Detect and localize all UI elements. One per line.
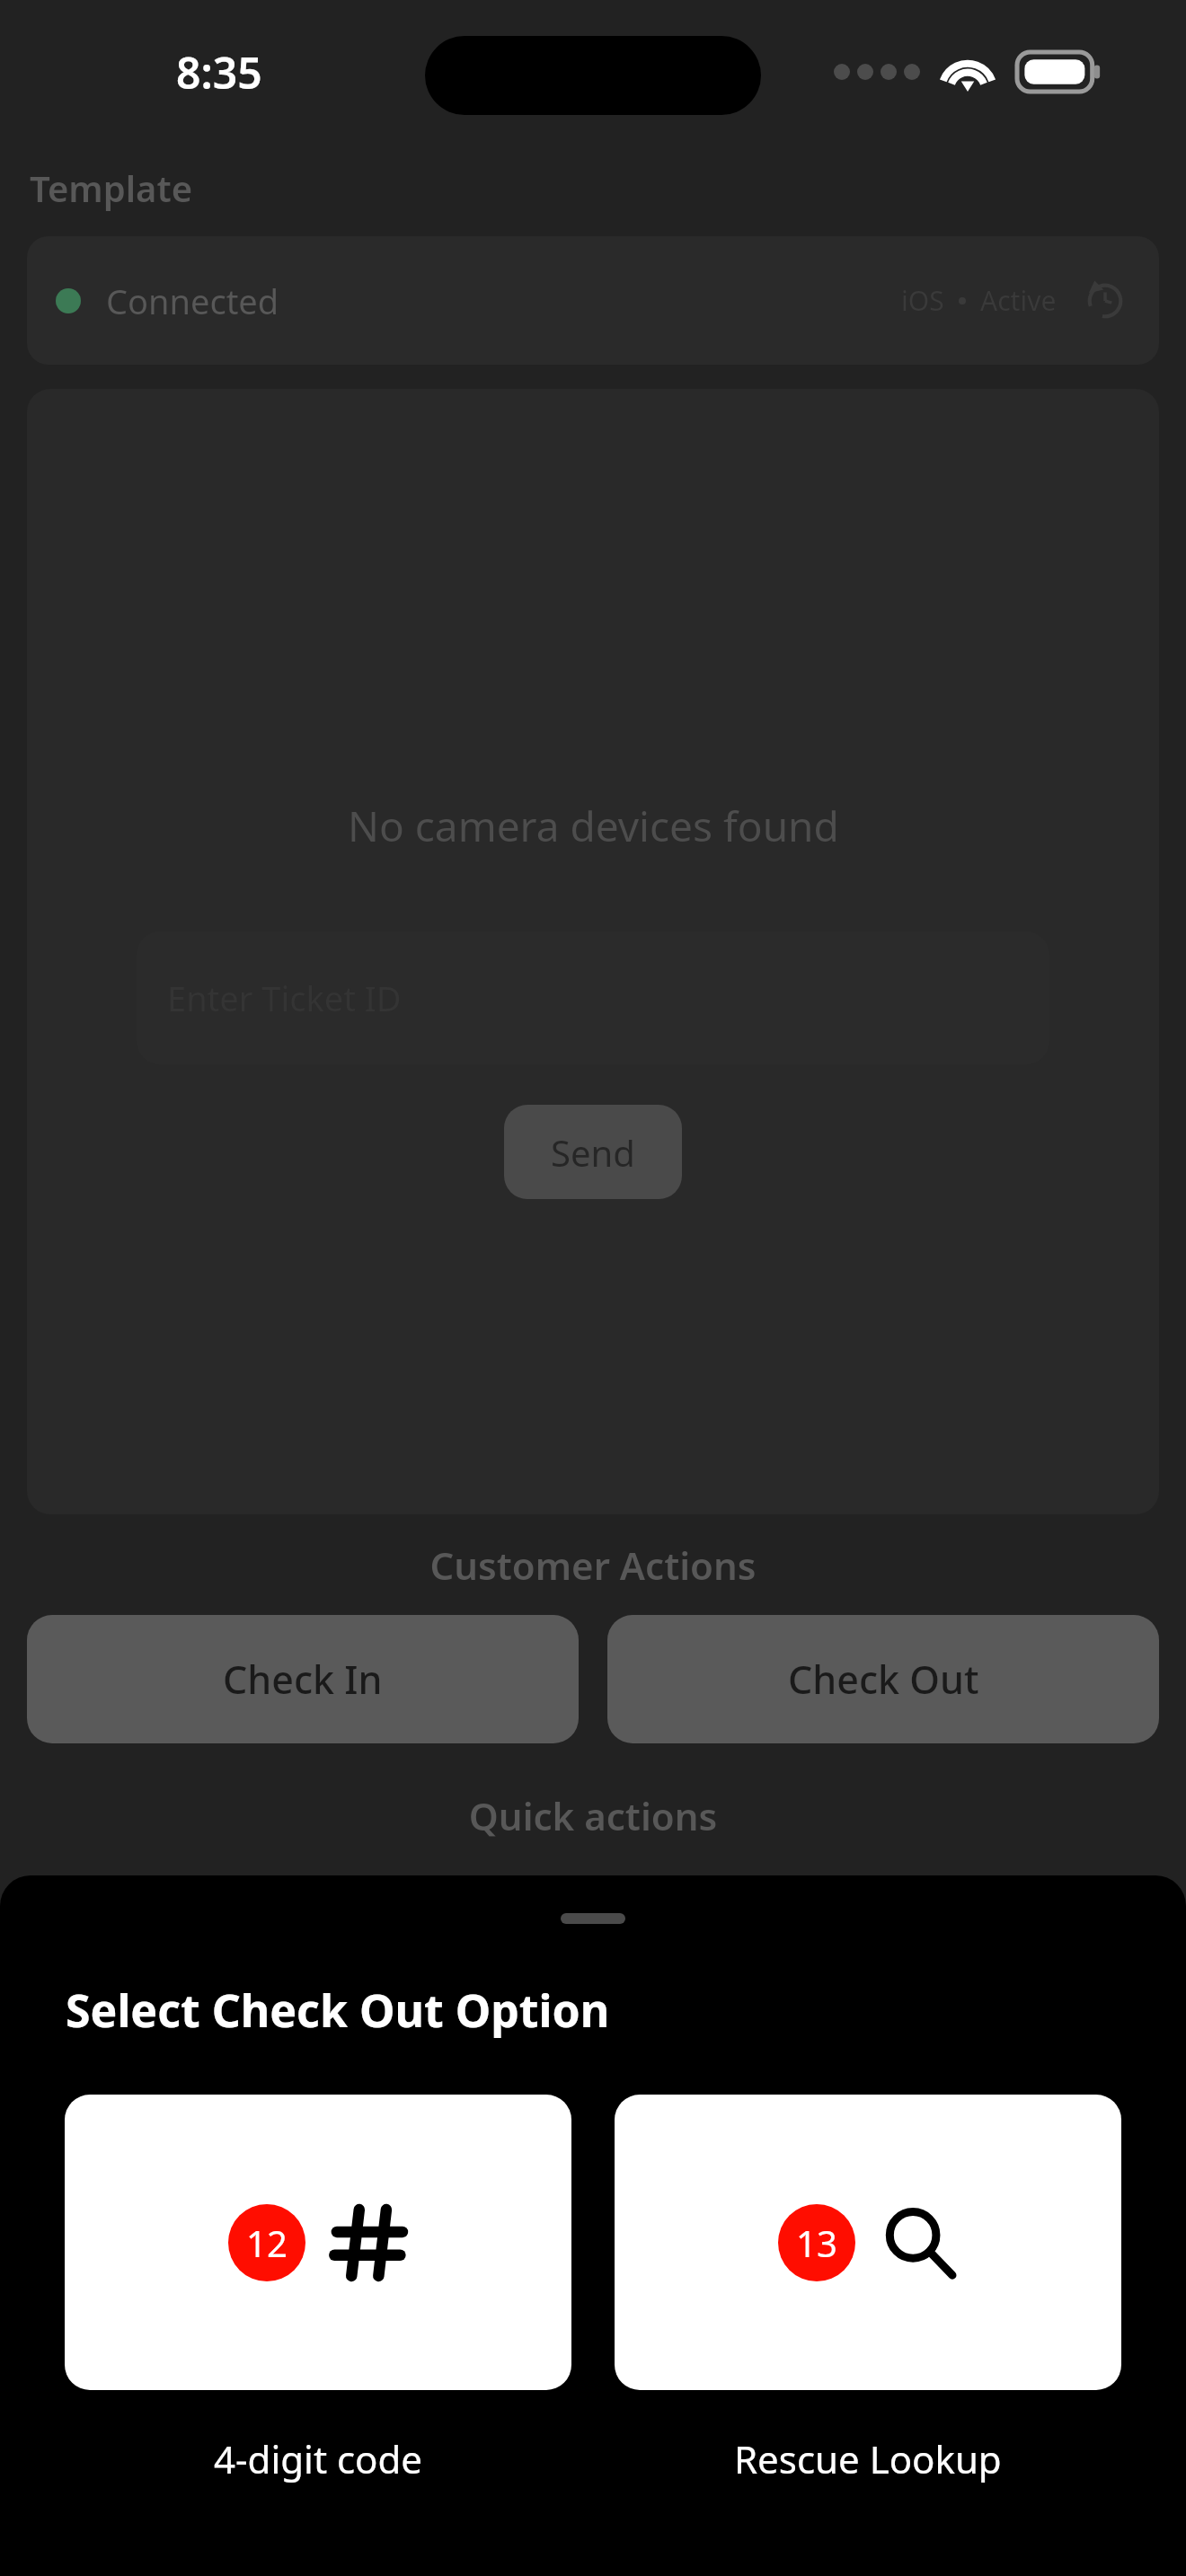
- staticText: Check Out: [788, 1653, 979, 1706]
- button[interactable]: History: [1080, 276, 1130, 326]
- staticText: 4-digit code: [214, 2433, 423, 2484]
- staticText: Send: [551, 1128, 635, 1177]
- button[interactable]: Send: [504, 1105, 682, 1199]
- staticText: Check In: [223, 1653, 383, 1706]
- staticText: No camera devices found: [348, 798, 839, 854]
- staticText: 13: [796, 2219, 837, 2267]
- staticText: Connected: [106, 278, 279, 324]
- staticText: 8:35: [176, 43, 262, 101]
- staticText: Active: [980, 282, 1057, 319]
- staticText: Template: [30, 163, 193, 212]
- staticText: Customer Actions: [0, 1539, 1186, 1591]
- staticText: Rescue Lookup: [734, 2433, 1002, 2484]
- staticText: 12: [246, 2219, 288, 2267]
- staticText: iOS: [901, 282, 944, 319]
- button[interactable]: Check In: [27, 1615, 579, 1743]
- staticText: Select Check Out Option: [66, 1980, 610, 2041]
- button[interactable]: 12: [65, 2095, 571, 2484]
- staticText: Quick actions: [0, 1790, 1186, 1841]
- button[interactable]: Check Out: [607, 1615, 1159, 1743]
- button[interactable]: 13: [615, 2095, 1121, 2484]
- button[interactable]: Connected: [27, 236, 1159, 365]
